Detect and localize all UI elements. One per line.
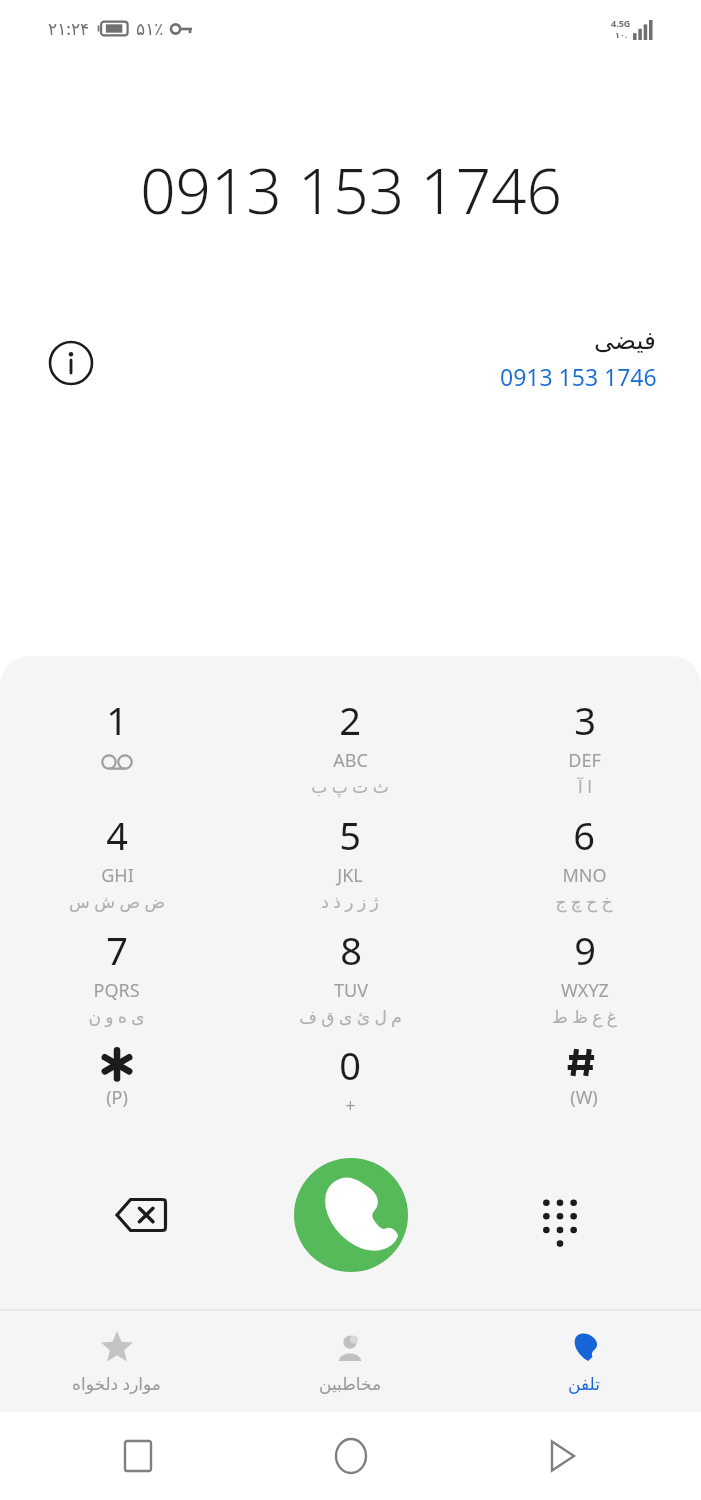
button[interactable]: 4 xyxy=(0,805,233,920)
staticText: ABC xyxy=(333,748,368,773)
staticText: 0913 153 1746 xyxy=(140,148,562,232)
button[interactable]: 5 xyxy=(233,805,467,920)
staticText: ث ت پ ب xyxy=(311,775,389,798)
button[interactable]: (W) xyxy=(467,1035,701,1145)
button[interactable]: موارد دلخواه xyxy=(0,1310,233,1412)
button[interactable]: Home xyxy=(323,1428,379,1484)
button[interactable]: 6 xyxy=(467,805,701,920)
button[interactable]: 3 xyxy=(467,690,701,805)
staticText: 4 xyxy=(106,809,128,861)
staticText: ا آ xyxy=(578,775,592,798)
button[interactable]: 0 xyxy=(233,1035,467,1145)
staticText: 2 xyxy=(339,694,361,746)
staticText: ض ص ش س xyxy=(69,890,165,913)
staticText: غ ع ظ ط xyxy=(552,1005,617,1028)
staticText: GHI xyxy=(101,863,134,888)
staticText: 0913 153 1746 xyxy=(500,361,657,392)
staticText: 5 xyxy=(339,809,361,861)
button[interactable]: 8 xyxy=(233,920,467,1035)
staticText: تلفن xyxy=(568,1374,600,1394)
button[interactable]: مخاطبین xyxy=(233,1310,467,1412)
button[interactable]: Back xyxy=(535,1428,591,1484)
staticText: 6 xyxy=(573,809,595,861)
button[interactable]: 2 xyxy=(233,690,467,805)
staticText: 3 xyxy=(574,694,596,746)
staticText: 8 xyxy=(340,924,362,976)
staticText: (W) xyxy=(570,1085,598,1110)
button[interactable]: 9 xyxy=(467,920,701,1035)
button[interactable]: Recents xyxy=(110,1428,166,1484)
staticText: WXYZ xyxy=(561,978,609,1003)
staticText: م ل ئ ی ق ف xyxy=(299,1005,402,1028)
button[interactable]: Delete xyxy=(105,1179,177,1251)
button[interactable]: 7 xyxy=(0,920,233,1035)
staticText: ژ ز ر ذ د xyxy=(321,890,379,913)
staticText: ۲۱:۲۴ xyxy=(48,17,90,40)
button[interactable]: فیضی xyxy=(500,326,657,392)
button[interactable]: تلفن xyxy=(467,1310,701,1412)
button[interactable]: 1 xyxy=(0,690,233,805)
staticText: MNO xyxy=(562,863,607,888)
staticText: فیضی xyxy=(594,326,657,355)
staticText: TUV xyxy=(334,978,368,1003)
staticText: ۵۱٪ xyxy=(136,19,164,39)
button[interactable]: Dialpad xyxy=(524,1179,596,1251)
staticText: 7 xyxy=(106,924,128,976)
staticText: خ ح چ ج xyxy=(555,890,613,913)
staticText: DEF xyxy=(568,748,601,773)
staticText: موارد دلخواه xyxy=(72,1372,161,1395)
staticText: 9 xyxy=(574,924,596,976)
staticText: + xyxy=(345,1093,356,1118)
staticText: 4.5G xyxy=(611,17,631,29)
staticText: JKL xyxy=(337,863,363,888)
button[interactable]: (P) xyxy=(0,1035,233,1145)
staticText: 1 xyxy=(106,694,128,746)
staticText: PQRS xyxy=(93,978,140,1003)
staticText: ی ه و ن xyxy=(88,1005,145,1028)
staticText: (P) xyxy=(106,1085,128,1110)
staticText: مخاطبین xyxy=(319,1374,381,1394)
staticText: 0 xyxy=(339,1039,361,1091)
staticText: ۱۰. xyxy=(615,29,628,40)
button[interactable]: Call xyxy=(294,1158,408,1272)
button[interactable]: Contact info xyxy=(42,334,100,392)
